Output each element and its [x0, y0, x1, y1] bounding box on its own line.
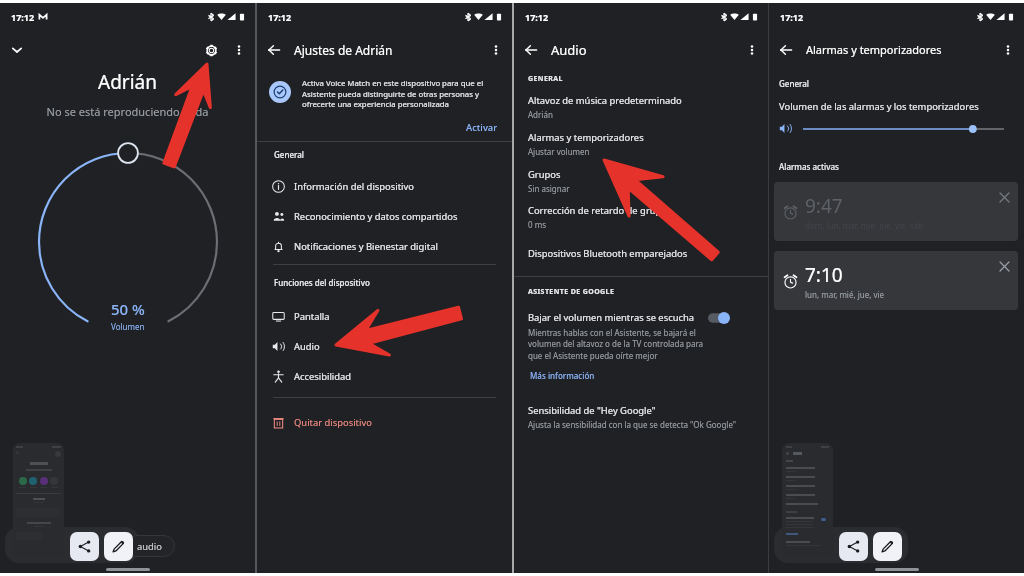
- staticText: Adrián: [0, 69, 255, 95]
- staticText: 17:12: [525, 11, 549, 23]
- button[interactable]: 9:47: [774, 182, 1018, 241]
- button[interactable]: Dismiss alarm: [996, 189, 1012, 205]
- button[interactable]: 7:10: [774, 251, 1018, 310]
- button[interactable]: More options: [484, 38, 508, 62]
- button[interactable]: Share: [70, 532, 99, 561]
- staticText: Dispositivos Bluetooth emparejados: [528, 247, 688, 260]
- staticText: Alarmas activas: [779, 161, 839, 172]
- staticText: Volumen: [111, 321, 145, 332]
- button[interactable]: Back: [262, 38, 286, 62]
- staticText: 17:12: [11, 11, 35, 23]
- staticText: Notificaciones y Bienestar digital: [294, 240, 438, 253]
- staticText: 17:12: [780, 11, 804, 23]
- staticText: Sin asignar: [528, 183, 570, 194]
- button[interactable]: Reconocimiento y datos compartidos: [257, 201, 512, 231]
- button[interactable]: Screenshot preview: [13, 443, 64, 558]
- button[interactable]: Altavoz de música predeterminado: [514, 94, 768, 120]
- button[interactable]: Edit: [873, 532, 902, 561]
- staticText: 0 ms: [528, 219, 546, 230]
- button[interactable]: Screenshot preview: [782, 443, 833, 558]
- staticText: Altavoz de música predeterminado: [528, 94, 682, 107]
- button[interactable]: Accesibilidad: [257, 361, 512, 391]
- staticText: GENERAL: [528, 74, 563, 84]
- staticText: Adrián: [528, 109, 553, 120]
- staticText: Pantalla: [294, 310, 330, 323]
- button[interactable]: More options: [740, 38, 764, 62]
- staticText: Bajar el volumen mientras se escucha: [528, 311, 695, 324]
- button[interactable]: Sensibilidad de "Hey Google": [514, 404, 768, 430]
- staticText: 7:10: [805, 262, 843, 288]
- staticText: Ajustes de Adrián: [294, 42, 393, 58]
- button[interactable]: Grupos: [514, 168, 768, 194]
- button[interactable]: Notificaciones y Bienestar digital: [257, 231, 512, 261]
- staticText: Audio: [294, 340, 320, 353]
- button[interactable]: Pantalla: [257, 301, 512, 331]
- staticText: Alarmas y temporizadores: [528, 131, 644, 144]
- staticText: Sensibilidad de "Hey Google": [528, 404, 656, 417]
- staticText: Reconocimiento y datos compartidos: [294, 210, 458, 223]
- button[interactable]: Alarmas y temporizadores: [514, 131, 768, 157]
- button[interactable]: Share: [839, 532, 868, 561]
- staticText: Corrección de retardo de grupo: [528, 204, 668, 217]
- staticText: No se está reproduciendo nada: [0, 104, 255, 119]
- button[interactable]: Quitar dispositivo: [257, 407, 512, 437]
- button[interactable]: Audio: [257, 331, 512, 361]
- button[interactable]: Dismiss alarm: [996, 258, 1012, 274]
- staticText: 9:47: [805, 193, 843, 219]
- button[interactable]: Más información: [530, 369, 595, 382]
- button[interactable]: Volume slider: [803, 123, 1004, 135]
- button[interactable]: Información del dispositivo: [257, 171, 512, 201]
- button[interactable]: More options: [227, 38, 251, 62]
- staticText: Más información: [530, 370, 595, 381]
- staticText: Volumen de las alarmas y los temporizado…: [779, 100, 979, 113]
- staticText: Activar: [466, 121, 498, 134]
- button[interactable]: Back: [519, 38, 543, 62]
- staticText: Información del dispositivo: [294, 180, 414, 193]
- button[interactable]: Collapse: [6, 39, 28, 61]
- staticText: 50 %: [111, 299, 145, 319]
- staticText: Accesibilidad: [294, 370, 352, 383]
- staticText: Funciones del dispositivo: [274, 277, 370, 288]
- staticText: General: [274, 149, 304, 160]
- staticText: Quitar dispositivo: [294, 416, 372, 429]
- staticText: Ajustar volumen: [528, 146, 590, 157]
- staticText: lun, mar, mié, jue, vie: [805, 289, 885, 300]
- button[interactable]: Back: [774, 38, 798, 62]
- staticText: ASISTENTE DE GOOGLE: [528, 287, 615, 297]
- staticText: Audio: [551, 41, 587, 59]
- staticText: Mientras hablas con el Asistente, se baj…: [528, 327, 704, 362]
- button[interactable]: Lower volume while listening: [708, 312, 730, 324]
- staticText: Alarmas y temporizadores: [806, 42, 942, 57]
- button[interactable]: Dispositivos Bluetooth emparejados: [514, 246, 768, 261]
- button[interactable]: Settings: [199, 38, 223, 62]
- button[interactable]: Corrección de retardo de grupo: [514, 204, 768, 230]
- staticText: dom, lun, mar, mié, jue, vie, sáb: [805, 220, 923, 231]
- button[interactable]: More options: [996, 38, 1020, 62]
- staticText: Activa Voice Match en este dispositivo p…: [302, 78, 500, 110]
- staticText: audio: [137, 540, 162, 553]
- button[interactable]: audio: [126, 535, 175, 557]
- staticText: Grupos: [528, 168, 561, 181]
- button[interactable]: Edit: [104, 532, 133, 561]
- button[interactable]: Bajar el volumen mientras se escucha: [514, 311, 768, 362]
- button[interactable]: Activar: [462, 119, 502, 136]
- staticText: 17:12: [268, 11, 292, 23]
- staticText: General: [779, 78, 809, 89]
- staticText: Ajusta la sensibilidad con la que se det…: [528, 419, 737, 430]
